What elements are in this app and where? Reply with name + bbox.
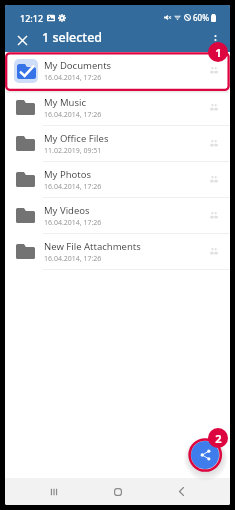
button[interactable]: Home bbox=[104, 478, 132, 505]
staticText: 16.04.2014, 17:26 bbox=[44, 254, 102, 264]
staticText: My Videos bbox=[44, 204, 90, 217]
staticText: 16.04.2014, 17:26 bbox=[44, 182, 102, 192]
staticText: My Photos bbox=[44, 168, 92, 181]
button[interactable]: My Music bbox=[5, 90, 230, 126]
button[interactable]: My Videos bbox=[5, 198, 230, 234]
staticText: 16.04.2014, 17:26 bbox=[44, 73, 102, 83]
staticText: 16.04.2014, 17:26 bbox=[44, 110, 102, 120]
button[interactable]: More options bbox=[206, 31, 224, 49]
staticText: My Office Files bbox=[44, 132, 109, 145]
button[interactable]: My Documents bbox=[5, 52, 230, 90]
button[interactable]: My Office Files bbox=[5, 126, 230, 162]
staticText: 1 selected bbox=[42, 29, 103, 46]
button[interactable]: Close selection bbox=[13, 31, 31, 49]
staticText: 12:12 bbox=[20, 12, 44, 24]
staticText: My Documents bbox=[44, 59, 112, 72]
button[interactable]: Share bbox=[191, 441, 219, 469]
button[interactable]: Back bbox=[167, 478, 195, 505]
staticText: 2 bbox=[215, 431, 222, 446]
staticText: 16.04.2014, 17:26 bbox=[44, 218, 102, 228]
staticText: My Music bbox=[44, 96, 86, 109]
staticText: 1 bbox=[215, 45, 222, 60]
staticText: New File Attachments bbox=[44, 240, 141, 253]
button[interactable]: Recent apps bbox=[40, 478, 68, 505]
button[interactable]: My Photos bbox=[5, 162, 230, 198]
staticText: 60% bbox=[193, 12, 209, 23]
staticText: 11.02.2019, 09:51 bbox=[44, 146, 102, 156]
button[interactable]: New File Attachments bbox=[5, 234, 230, 270]
